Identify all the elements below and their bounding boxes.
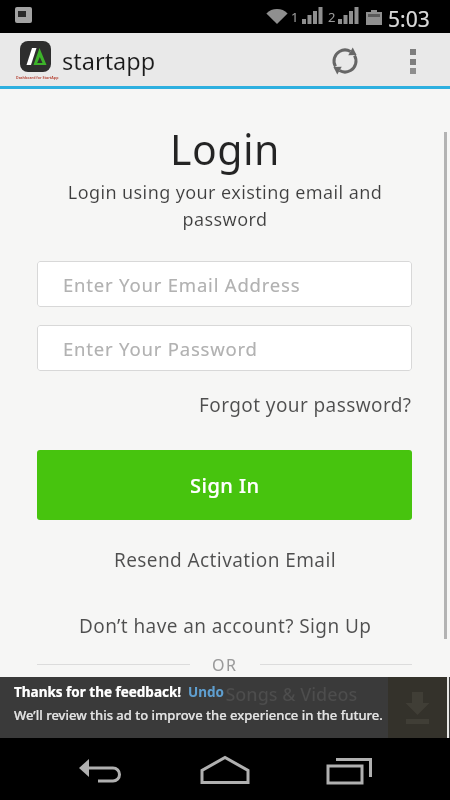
button[interactable]: Don’t have an account? Sign Up: [79, 613, 372, 639]
staticText: Undo: [188, 683, 224, 701]
button[interactable]: [70, 748, 130, 792]
button[interactable]: Undo: [188, 683, 224, 701]
button[interactable]: [320, 748, 380, 792]
button[interactable]: Dashboard for StartApp: [12, 36, 172, 84]
staticText: Login using your existing email and pass…: [0, 180, 450, 231]
button[interactable]: [388, 677, 447, 738]
staticText: Forgot your password?: [199, 392, 412, 418]
button[interactable]: Sign In: [37, 450, 412, 520]
staticText: OR: [212, 654, 238, 676]
button[interactable]: Forgot your password?: [199, 392, 412, 418]
button[interactable]: [195, 748, 255, 792]
staticText: 2: [328, 8, 336, 26]
button[interactable]: [321, 37, 369, 83]
staticText: Don’t have an account? Sign Up: [79, 613, 372, 639]
staticText: - Songs & Videos: [215, 682, 358, 707]
button[interactable]: Resend Activation Email: [114, 547, 336, 573]
staticText: Thanks for the feedback!: [14, 683, 182, 701]
staticText: Sign In: [190, 472, 260, 499]
staticText: Login: [0, 121, 450, 177]
button[interactable]: Enter Your Password: [37, 325, 412, 371]
button[interactable]: Enter Your Email Address: [37, 261, 412, 307]
staticText: Enter Your Email Address: [63, 272, 301, 297]
staticText: 5:03: [388, 5, 430, 34]
staticText: Enter Your Password: [63, 336, 258, 361]
staticText: startapp: [62, 45, 156, 77]
staticText: Resend Activation Email: [114, 547, 336, 573]
staticText: 1: [291, 8, 299, 26]
button[interactable]: [398, 39, 428, 81]
staticText: Dashboard for StartApp: [16, 75, 59, 80]
staticText: We’ll review this ad to improve the expe…: [14, 706, 383, 724]
